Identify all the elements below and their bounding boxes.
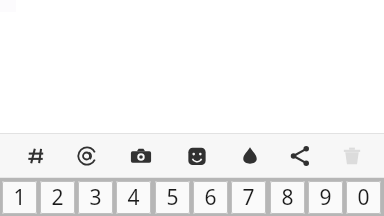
button[interactable]: Hashtag bbox=[14, 134, 58, 177]
button[interactable]: 2 bbox=[40, 181, 75, 214]
staticText: 6 bbox=[204, 183, 217, 212]
button[interactable]: 3 bbox=[78, 181, 113, 214]
staticText: 9 bbox=[319, 183, 332, 212]
button[interactable]: 0 bbox=[346, 181, 381, 214]
button[interactable]: 8 bbox=[270, 181, 305, 214]
button[interactable]: 5 bbox=[155, 181, 190, 214]
button[interactable]: Delete bbox=[330, 134, 374, 177]
button[interactable]: 1 bbox=[2, 181, 37, 214]
button[interactable]: Emoji bbox=[175, 134, 219, 177]
staticText: 7 bbox=[242, 183, 255, 212]
staticText: 1 bbox=[13, 183, 26, 212]
staticText: 0 bbox=[357, 183, 370, 212]
button[interactable]: 4 bbox=[116, 181, 151, 214]
button[interactable]: Mention bbox=[65, 134, 109, 177]
staticText: 2 bbox=[51, 183, 64, 212]
staticText: 3 bbox=[89, 183, 102, 212]
button[interactable]: Ink color bbox=[228, 134, 272, 177]
staticText: 8 bbox=[281, 183, 294, 212]
staticText: 5 bbox=[166, 183, 179, 212]
button[interactable]: 7 bbox=[231, 181, 266, 214]
staticText: 4 bbox=[127, 183, 140, 212]
button[interactable]: Share bbox=[278, 134, 322, 177]
button[interactable]: 9 bbox=[308, 181, 343, 214]
button[interactable]: 6 bbox=[193, 181, 228, 214]
button[interactable]: Camera bbox=[119, 134, 163, 177]
